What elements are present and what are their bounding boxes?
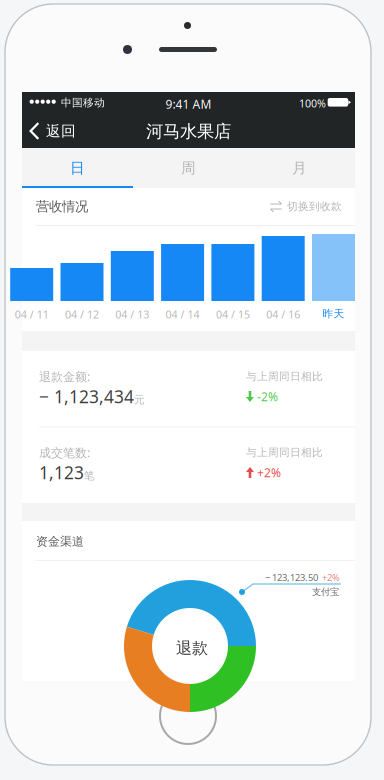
staticText: 河马水果店 xyxy=(146,120,231,142)
staticText: 昨天 xyxy=(322,307,344,320)
staticText: 04 / 12 xyxy=(65,307,99,321)
staticText: 04 / 15 xyxy=(216,307,250,321)
staticText: 切换到收款 xyxy=(287,200,342,213)
staticText: 04 / 13 xyxy=(115,307,149,321)
button[interactable]: 日 xyxy=(22,148,133,188)
staticText: 04 / 16 xyxy=(266,307,300,321)
staticText: 04 / 11 xyxy=(15,307,49,321)
staticText: 周 xyxy=(181,159,196,177)
staticText: 营收情况 xyxy=(36,198,88,215)
staticText: 成交笔数: xyxy=(39,444,90,461)
staticText: 支付宝 xyxy=(312,586,339,598)
staticText: 9:41 AM xyxy=(165,96,211,112)
staticText: − 1,123,434 xyxy=(39,385,134,408)
staticText: 元 xyxy=(134,393,145,406)
staticText: 退款金额: xyxy=(39,368,90,385)
button[interactable]: 月 xyxy=(244,148,355,188)
staticText: 1,123 xyxy=(39,461,84,484)
staticText: 月 xyxy=(292,159,307,177)
staticText: +2% xyxy=(257,464,281,481)
staticText: 中国移动 xyxy=(61,96,105,109)
button[interactable]: 返回 xyxy=(22,116,85,146)
staticText: 资金渠道 xyxy=(36,534,84,549)
staticText: 与上周同日相比 xyxy=(246,446,323,459)
staticText: 返回 xyxy=(46,122,76,140)
staticText: 100% xyxy=(299,96,326,110)
staticText: 日 xyxy=(70,159,85,177)
staticText: +2% xyxy=(322,571,340,584)
staticText: -2% xyxy=(257,388,278,405)
staticText: − 123,123.50 xyxy=(265,571,318,584)
staticText: 笔 xyxy=(84,469,95,482)
button[interactable]: 切换到收款 xyxy=(270,200,342,213)
staticText: 04 / 14 xyxy=(166,307,200,321)
staticText: 退款 xyxy=(176,638,208,658)
staticText: 与上周同日相比 xyxy=(246,370,323,383)
button[interactable]: 周 xyxy=(133,148,244,188)
